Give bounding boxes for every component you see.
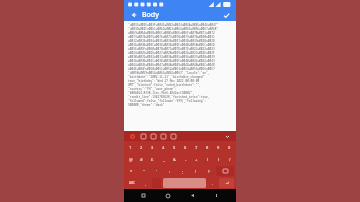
staticText: . <box>212 181 214 186</box>
staticText: ABC <box>129 181 136 185</box>
staticText: ? <box>208 169 210 174</box>
button[interactable]: @ <box>126 154 135 164</box>
staticText: & <box>173 157 176 162</box>
staticText: @ <box>129 157 133 162</box>
button[interactable]: + <box>192 154 201 164</box>
staticText: # <box>140 157 143 162</box>
button[interactable]: / <box>225 154 234 164</box>
staticText: , <box>145 181 147 186</box>
button[interactable]: & <box>170 154 179 164</box>
button[interactable]: ABC <box>126 178 139 188</box>
staticText: 9 <box>217 145 220 150</box>
button[interactable]: . <box>208 178 217 188</box>
staticText: ! <box>195 169 197 174</box>
button[interactable]: Enter <box>219 178 234 188</box>
button[interactable]: Clipboard <box>159 132 167 140</box>
button[interactable]: " <box>138 166 149 176</box>
button[interactable]: , <box>141 178 150 188</box>
button[interactable]: 5 <box>170 142 179 152</box>
button[interactable]: ) <box>214 154 223 164</box>
staticText: "u003Cu003Eu003Fu0041u0042u0043u0044u004… <box>128 23 232 107</box>
button[interactable]: 3 <box>148 142 157 152</box>
button[interactable]: _ <box>159 154 168 164</box>
button[interactable]: ( <box>203 154 212 164</box>
button[interactable]: Hide keyboard <box>223 132 231 140</box>
staticText: 0 <box>228 145 231 150</box>
button[interactable]: £ <box>148 154 157 164</box>
staticText: ; <box>182 169 184 174</box>
button[interactable]: ; <box>177 166 188 176</box>
staticText: / <box>229 157 231 162</box>
button[interactable]: 4 <box>159 142 168 152</box>
button[interactable]: Google <box>129 133 136 140</box>
staticText: - <box>185 157 187 162</box>
button[interactable]: - <box>181 154 190 164</box>
button[interactable]: Home <box>162 190 173 201</box>
button[interactable]: Back <box>129 10 138 19</box>
staticText: 8 <box>206 145 209 150</box>
button[interactable]: Backspace <box>216 166 234 176</box>
button[interactable]: ? <box>203 166 214 176</box>
staticText: 2 <box>140 145 143 150</box>
button[interactable]: ! <box>190 166 201 176</box>
button[interactable]: ' <box>151 166 162 176</box>
staticText: 6 <box>184 145 187 150</box>
staticText: 3 <box>151 145 154 150</box>
button[interactable]: : <box>164 166 175 176</box>
button[interactable]: * <box>126 166 136 176</box>
button[interactable]: Save <box>221 10 231 20</box>
button[interactable]: Recents <box>138 190 149 201</box>
staticText: ) <box>218 157 220 162</box>
button[interactable]: 7 <box>192 142 201 152</box>
button[interactable]: 2 <box>137 142 146 152</box>
staticText: ' <box>156 169 157 174</box>
staticText: _ <box>163 157 165 162</box>
staticText: + <box>195 157 198 162</box>
button[interactable]: Settings <box>169 132 177 140</box>
button[interactable]: GIF <box>149 132 157 140</box>
button[interactable]: Back <box>187 190 198 201</box>
staticText: * <box>130 169 133 174</box>
staticText: " <box>143 169 145 174</box>
button[interactable]: 1 <box>126 142 135 152</box>
staticText: ( <box>207 157 209 162</box>
button[interactable]: 6 <box>181 142 190 152</box>
staticText: 1 <box>129 145 132 150</box>
staticText: £ <box>151 157 154 162</box>
staticText: 7 <box>195 145 198 150</box>
staticText: : <box>169 169 171 174</box>
button[interactable]: 9 <box>214 142 223 152</box>
button[interactable]: Down <box>211 190 222 201</box>
button[interactable]: Space <box>163 178 206 188</box>
staticText: 4 <box>162 145 165 150</box>
button[interactable]: 0 <box>225 142 234 152</box>
staticText: 5 <box>173 145 176 150</box>
button[interactable]: # <box>137 154 146 164</box>
button[interactable]: Stickers <box>139 132 147 140</box>
staticText: Body <box>142 10 159 20</box>
button[interactable]: 8 <box>203 142 212 152</box>
